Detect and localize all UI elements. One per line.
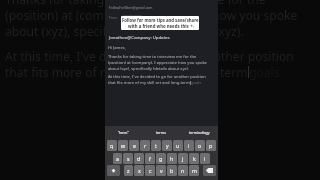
staticText: d	[137, 155, 141, 162]
button[interactable]: terminology	[180, 126, 218, 139]
button[interactable]: q	[107, 140, 117, 151]
staticText: k	[193, 155, 196, 162]
staticText: FollowForMore@gmail.com	[109, 5, 153, 10]
button[interactable]: terms	[142, 126, 180, 139]
button[interactable]: h	[167, 153, 177, 164]
staticText: Thanks for taking time to interview me f…	[108, 54, 197, 60]
staticText: about (xyz), specifically (details about…	[108, 66, 189, 72]
staticText: with a friend who needs this	[128, 23, 189, 29]
staticText: i	[188, 142, 190, 149]
button[interactable]: Shift	[107, 165, 120, 176]
button[interactable]: “term”	[105, 126, 142, 139]
button[interactable]: c	[145, 165, 155, 176]
staticText: m	[192, 167, 197, 174]
staticText: goals	[191, 80, 202, 86]
staticText: j	[182, 155, 184, 162]
button[interactable]: r	[140, 140, 150, 151]
button[interactable]: d	[134, 153, 144, 164]
staticText: t	[155, 142, 157, 149]
staticText: terms	[156, 130, 166, 135]
button[interactable]: m	[189, 165, 199, 176]
staticText: b	[170, 167, 174, 174]
staticText: o	[198, 142, 202, 149]
staticText: At this time, I've decided to go for ano…	[108, 74, 206, 80]
button[interactable]: l	[200, 153, 210, 164]
staticText: that fits more of my skill set and long-	[5, 64, 220, 80]
staticText: r	[144, 142, 147, 149]
staticText: s	[127, 155, 130, 162]
staticText: q	[110, 142, 114, 149]
button[interactable]: y	[162, 140, 172, 151]
button[interactable]: f	[145, 153, 155, 164]
button[interactable]: p	[206, 140, 216, 151]
staticText: z	[127, 167, 130, 174]
staticText: f	[149, 155, 151, 162]
button[interactable]: v	[156, 165, 166, 176]
staticText: y	[166, 142, 169, 149]
button[interactable]: w	[118, 140, 128, 151]
button[interactable]: Backspace	[203, 165, 216, 176]
button[interactable]: b	[167, 165, 177, 176]
button[interactable]: j	[178, 153, 188, 164]
button[interactable]: a	[113, 153, 122, 164]
staticText: n	[181, 167, 185, 174]
staticText: p	[209, 142, 213, 149]
staticText: x	[138, 167, 141, 174]
staticText: goals	[249, 64, 280, 80]
staticText: From	[109, 15, 118, 20]
staticText: c	[149, 167, 152, 174]
staticText: (position) at (company). I appreciate ho…	[5, 7, 298, 23]
button[interactable]: o	[195, 140, 205, 151]
button[interactable]: z	[124, 165, 133, 176]
staticText: Jonathon@Company: Updates	[109, 34, 170, 40]
staticText: Hi James,	[108, 45, 126, 51]
button[interactable]: x	[134, 165, 144, 176]
staticText: Thanks for taking time to interview me f…	[5, 0, 266, 7]
button[interactable]: k	[189, 153, 199, 164]
staticText: l	[204, 155, 206, 162]
staticText: v	[160, 167, 163, 174]
staticText: “term”	[118, 130, 129, 135]
staticText: g	[159, 155, 163, 162]
staticText: w	[121, 142, 126, 149]
staticText: that fits more of my skill set and long-…	[108, 80, 190, 86]
button[interactable]: i	[184, 140, 194, 151]
staticText: u	[176, 142, 180, 149]
staticText: term	[220, 64, 248, 80]
button[interactable]: n	[178, 165, 188, 176]
button[interactable]: e	[129, 140, 139, 151]
staticText: terminology	[189, 130, 210, 135]
staticText: a	[116, 155, 119, 162]
button[interactable]: u	[173, 140, 183, 151]
button[interactable]: g	[156, 153, 166, 164]
staticText: Follow for more tips and save/share	[122, 17, 199, 23]
staticText: At this time, I've decided to go for ano…	[5, 48, 294, 64]
button[interactable]: s	[123, 153, 133, 164]
staticText: h	[170, 155, 174, 162]
staticText: (position) at (company). I appreciate ho…	[108, 60, 207, 66]
staticText: e	[133, 142, 136, 149]
staticText: about (xyz), specifically (details about…	[5, 23, 244, 39]
button[interactable]: Follow for more tips and save/share	[121, 16, 199, 30]
button[interactable]: t	[151, 140, 161, 151]
